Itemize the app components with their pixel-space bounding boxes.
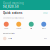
staticText: Good morning — [3, 1, 24, 5]
staticText: Bills — [30, 27, 32, 29]
staticText: Recent activity — [3, 33, 15, 34]
staticText: Top up — [16, 27, 21, 29]
staticText: -9.99 — [44, 38, 47, 39]
button[interactable]: Bills — [25, 22, 37, 29]
staticText: Spotify — [8, 38, 12, 39]
button[interactable]: Spotify — [0, 36, 50, 41]
staticText: More — [42, 27, 46, 29]
staticText: Quick actions — [3, 11, 22, 15]
staticText: $4,820.50 — [3, 5, 19, 8]
staticText: Send money, pay bills and top up — [3, 17, 24, 19]
button[interactable]: Top up — [12, 22, 25, 29]
button[interactable]: See all — [43, 12, 47, 14]
button[interactable]: More — [37, 22, 50, 29]
staticText: Send — [4, 27, 8, 29]
staticText: See all — [43, 12, 47, 14]
button[interactable]: Send — [0, 22, 12, 29]
